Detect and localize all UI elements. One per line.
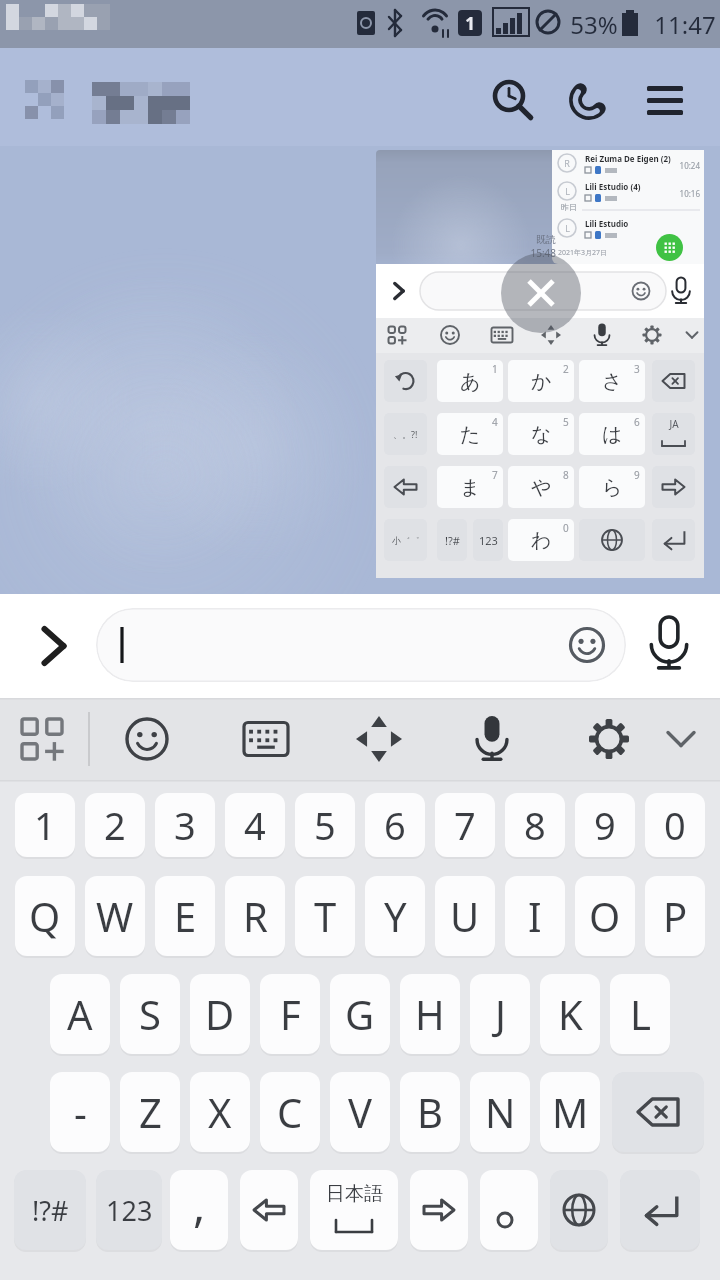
staticText: T xyxy=(314,889,337,943)
button[interactable]: 6 xyxy=(365,793,425,857)
button[interactable] xyxy=(30,620,80,672)
button[interactable]: C xyxy=(260,1072,320,1152)
staticText: 8 xyxy=(524,799,546,851)
button[interactable]: 1 xyxy=(15,793,75,857)
button[interactable]: E xyxy=(155,876,215,956)
staticText: L xyxy=(565,185,570,197)
button[interactable]: や xyxy=(508,466,574,508)
button[interactable]: た xyxy=(437,413,503,455)
button[interactable] xyxy=(470,717,514,761)
button[interactable]: 3 xyxy=(155,793,215,857)
button[interactable] xyxy=(579,519,645,561)
staticText: X xyxy=(208,1085,232,1139)
button[interactable]: 日本語 xyxy=(310,1170,398,1250)
button[interactable] xyxy=(644,612,694,678)
staticText: N xyxy=(485,1085,516,1139)
button[interactable]: W xyxy=(85,876,145,956)
button[interactable]: ま xyxy=(437,466,503,508)
button[interactable]: 0 xyxy=(645,793,705,857)
button[interactable]: I xyxy=(505,876,565,956)
button[interactable] xyxy=(587,717,631,761)
button[interactable]: 2 xyxy=(85,793,145,857)
button[interactable] xyxy=(384,360,427,402)
button[interactable]: X xyxy=(190,1072,250,1152)
button[interactable] xyxy=(357,717,401,761)
staticText: 1 xyxy=(34,799,56,851)
button[interactable]: R xyxy=(225,876,285,956)
button[interactable]: !?# xyxy=(437,519,467,561)
button[interactable]: 123 xyxy=(96,1170,162,1250)
button[interactable]: ら xyxy=(579,466,645,508)
button[interactable]: V xyxy=(330,1072,390,1152)
button[interactable]: F xyxy=(260,974,320,1054)
button[interactable]: あ xyxy=(437,360,503,402)
button[interactable] xyxy=(550,1170,608,1250)
button[interactable] xyxy=(125,717,169,761)
button[interactable] xyxy=(376,150,704,578)
button[interactable] xyxy=(480,1170,538,1250)
button[interactable] xyxy=(96,608,626,682)
staticText: 2 xyxy=(563,362,569,376)
button[interactable] xyxy=(384,466,427,508)
staticText: 7 xyxy=(492,468,498,482)
button[interactable] xyxy=(560,72,616,128)
button[interactable]: 4 xyxy=(225,793,285,857)
button[interactable]: わ xyxy=(508,519,574,561)
button[interactable] xyxy=(20,717,64,761)
button[interactable]: T xyxy=(295,876,355,956)
button[interactable]: J xyxy=(470,974,530,1054)
button[interactable] xyxy=(410,1170,468,1250)
button[interactable]: B xyxy=(400,1072,460,1152)
staticText: Lili Estudio (4) xyxy=(585,181,641,192)
button[interactable] xyxy=(652,519,695,561)
button[interactable] xyxy=(484,72,540,128)
staticText: か xyxy=(531,369,552,394)
staticText: 、。?! xyxy=(393,428,418,440)
button[interactable]: L xyxy=(610,974,670,1054)
button[interactable]: !?# xyxy=(14,1170,86,1250)
button[interactable]: Z xyxy=(120,1072,180,1152)
button[interactable] xyxy=(652,360,695,402)
button[interactable]: O xyxy=(575,876,635,956)
button[interactable]: 7 xyxy=(435,793,495,857)
button[interactable] xyxy=(501,253,581,333)
button[interactable]: U xyxy=(435,876,495,956)
staticText: 小゛゜ xyxy=(392,535,420,546)
staticText: !?# xyxy=(445,533,460,548)
button[interactable]: N xyxy=(470,1072,530,1152)
button[interactable]: S xyxy=(120,974,180,1054)
button[interactable]: 9 xyxy=(575,793,635,857)
button[interactable]: か xyxy=(508,360,574,402)
button[interactable]: Y xyxy=(365,876,425,956)
button[interactable]: , xyxy=(170,1170,228,1250)
button[interactable]: P xyxy=(645,876,705,956)
button[interactable]: さ xyxy=(579,360,645,402)
button[interactable]: 5 xyxy=(295,793,355,857)
button[interactable]: Q xyxy=(15,876,75,956)
button[interactable]: M xyxy=(540,1072,600,1152)
button[interactable] xyxy=(240,1170,298,1250)
button[interactable]: G xyxy=(330,974,390,1054)
button[interactable]: 123 xyxy=(473,519,503,561)
button[interactable]: D xyxy=(190,974,250,1054)
button[interactable]: H xyxy=(400,974,460,1054)
staticText: 2021年3月27日 xyxy=(558,248,608,258)
staticText: U xyxy=(450,889,480,943)
button[interactable] xyxy=(612,1072,704,1152)
button[interactable]: は xyxy=(579,413,645,455)
button[interactable]: K xyxy=(540,974,600,1054)
button[interactable]: A xyxy=(50,974,110,1054)
button[interactable] xyxy=(244,717,288,761)
staticText: V xyxy=(348,1085,372,1139)
staticText: P xyxy=(663,889,688,943)
button[interactable]: 、。?! xyxy=(384,413,427,455)
button[interactable] xyxy=(620,1170,700,1250)
button[interactable] xyxy=(652,466,695,508)
button[interactable] xyxy=(640,72,696,128)
button[interactable] xyxy=(659,717,703,761)
button[interactable]: 8 xyxy=(505,793,565,857)
button[interactable]: 小゛゜ xyxy=(384,519,427,561)
button[interactable] xyxy=(652,413,695,455)
button[interactable]: - xyxy=(50,1072,110,1152)
button[interactable]: な xyxy=(508,413,574,455)
